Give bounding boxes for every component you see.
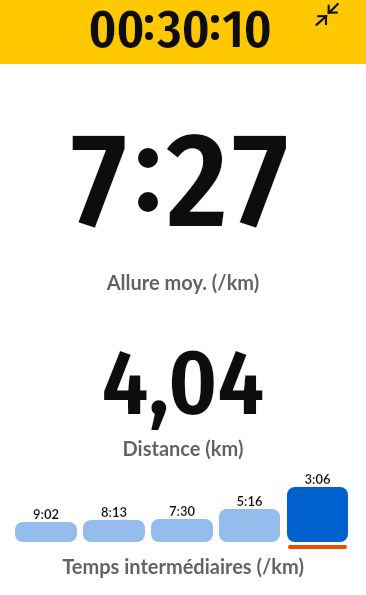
staticText: 27	[166, 102, 294, 262]
staticText: 4,04	[0, 328, 366, 438]
button[interactable]	[15, 522, 77, 542]
staticText: 3:06	[287, 471, 348, 487]
button[interactable]	[219, 509, 280, 542]
staticText: Distance (km)	[0, 436, 366, 460]
staticText: 7	[71, 102, 127, 262]
staticText: 7:30	[151, 503, 213, 519]
staticText: 00	[88, 0, 145, 60]
button[interactable]	[151, 519, 213, 542]
button[interactable]	[83, 520, 145, 542]
staticText: Allure moy. (/km)	[0, 270, 366, 294]
staticText: 9:02	[15, 506, 77, 522]
staticText: 30	[157, 0, 210, 60]
staticText: 5:16	[219, 493, 280, 509]
staticText: 8:13	[83, 504, 145, 520]
button[interactable]: Reduce	[314, 2, 338, 26]
staticText: Temps intermédiaires (/km)	[0, 554, 366, 578]
button[interactable]	[287, 487, 348, 542]
staticText: 10	[222, 0, 272, 60]
